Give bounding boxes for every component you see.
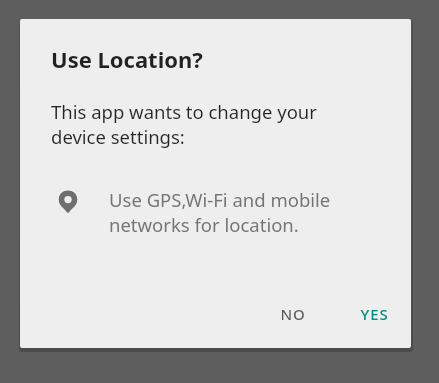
other: Location [56, 190, 80, 214]
staticText: This app wants to change your device set… [51, 99, 317, 150]
staticText: YES [360, 304, 389, 324]
staticText: NO [280, 304, 306, 324]
staticText: Use GPS,Wi-Fi and mobile networks for lo… [109, 187, 331, 238]
staticText: Use Location? [51, 44, 203, 74]
button[interactable]: NO [266, 296, 320, 332]
button[interactable]: YES [346, 296, 403, 332]
